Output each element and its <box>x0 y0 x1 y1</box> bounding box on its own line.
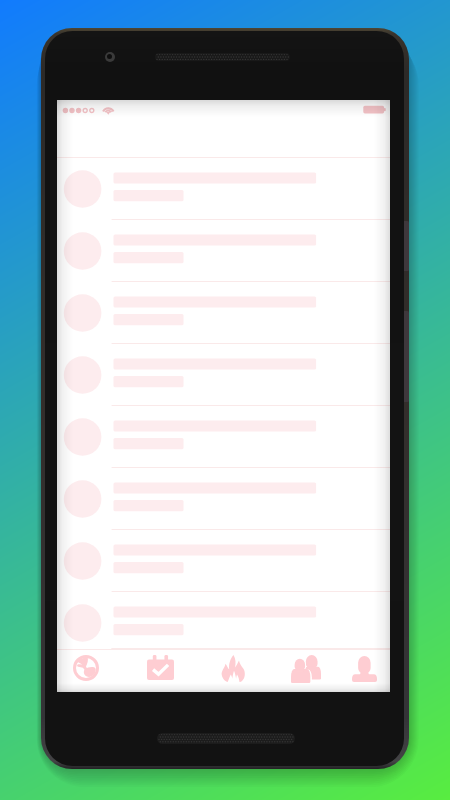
button[interactable]: Trending <box>213 649 254 692</box>
button[interactable]: Friends <box>283 649 329 692</box>
button[interactable] <box>57 592 390 649</box>
button[interactable] <box>57 158 390 220</box>
button[interactable]: Explore <box>65 649 107 692</box>
button[interactable] <box>57 220 390 282</box>
button[interactable] <box>57 406 390 468</box>
button[interactable]: Profile <box>344 649 385 692</box>
button[interactable] <box>57 344 390 406</box>
button[interactable]: Events <box>139 649 182 692</box>
button[interactable] <box>57 468 390 530</box>
button[interactable] <box>57 282 390 344</box>
button[interactable] <box>57 530 390 592</box>
